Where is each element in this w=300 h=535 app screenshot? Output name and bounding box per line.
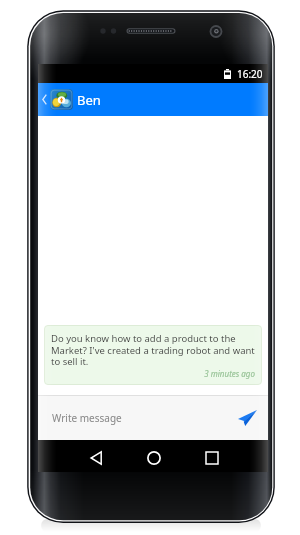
button[interactable]: Recent apps — [197, 443, 226, 472]
button[interactable]: Send — [236, 407, 258, 429]
button[interactable]: Contact avatar — [50, 89, 73, 110]
staticText: Write message — [52, 411, 122, 425]
staticText: Ben — [77, 91, 101, 109]
button[interactable]: Back — [38, 83, 50, 116]
staticText: 3 minutes ago — [51, 368, 255, 379]
staticText: 16:20 — [237, 67, 263, 81]
button[interactable]: Write message — [52, 411, 236, 425]
staticText: Do you know how to add a product to the … — [51, 332, 255, 367]
button[interactable]: Home — [139, 443, 168, 472]
button[interactable]: Back — [81, 443, 110, 472]
button[interactable]: Do you know how to add a product to the … — [44, 325, 262, 385]
